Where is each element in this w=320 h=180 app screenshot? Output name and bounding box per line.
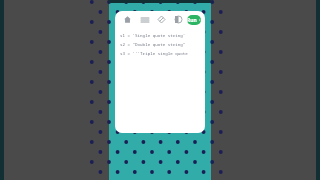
- button[interactable]: Format: [153, 11, 170, 28]
- button[interactable]: Home: [119, 11, 136, 28]
- staticText: s3 = '''Triple single quote string''': [120, 51, 201, 57]
- staticText: s2 = "Double quote string": [120, 42, 186, 48]
- staticText: Run: [187, 17, 197, 24]
- button[interactable]: Menu: [136, 11, 153, 28]
- button[interactable]: Theme: [170, 11, 187, 28]
- staticText: s1 = 'Single quote string': [120, 33, 186, 39]
- button[interactable]: Run: [187, 15, 201, 25]
